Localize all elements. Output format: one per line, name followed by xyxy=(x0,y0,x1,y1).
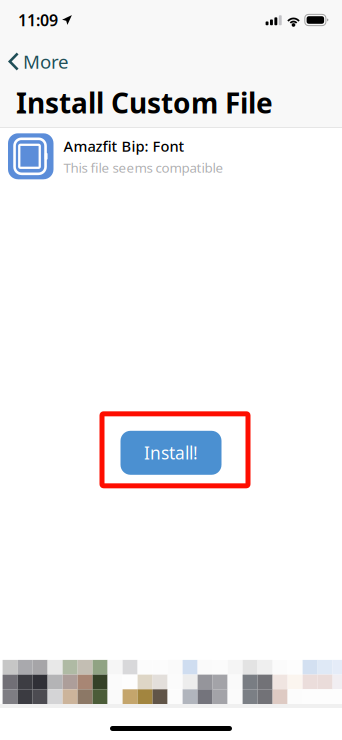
button[interactable]: More xyxy=(0,51,84,72)
staticText: More xyxy=(23,49,69,74)
staticText: 11:09 xyxy=(18,9,58,31)
button[interactable]: Amazfit Bip: Font xyxy=(0,128,342,185)
staticText: Amazfit Bip: Font xyxy=(63,136,184,156)
staticText: This file seems compatible xyxy=(63,159,223,176)
staticText: Install! xyxy=(144,441,198,464)
staticText: Install Custom File xyxy=(16,84,273,121)
button[interactable]: Install! xyxy=(100,412,250,488)
